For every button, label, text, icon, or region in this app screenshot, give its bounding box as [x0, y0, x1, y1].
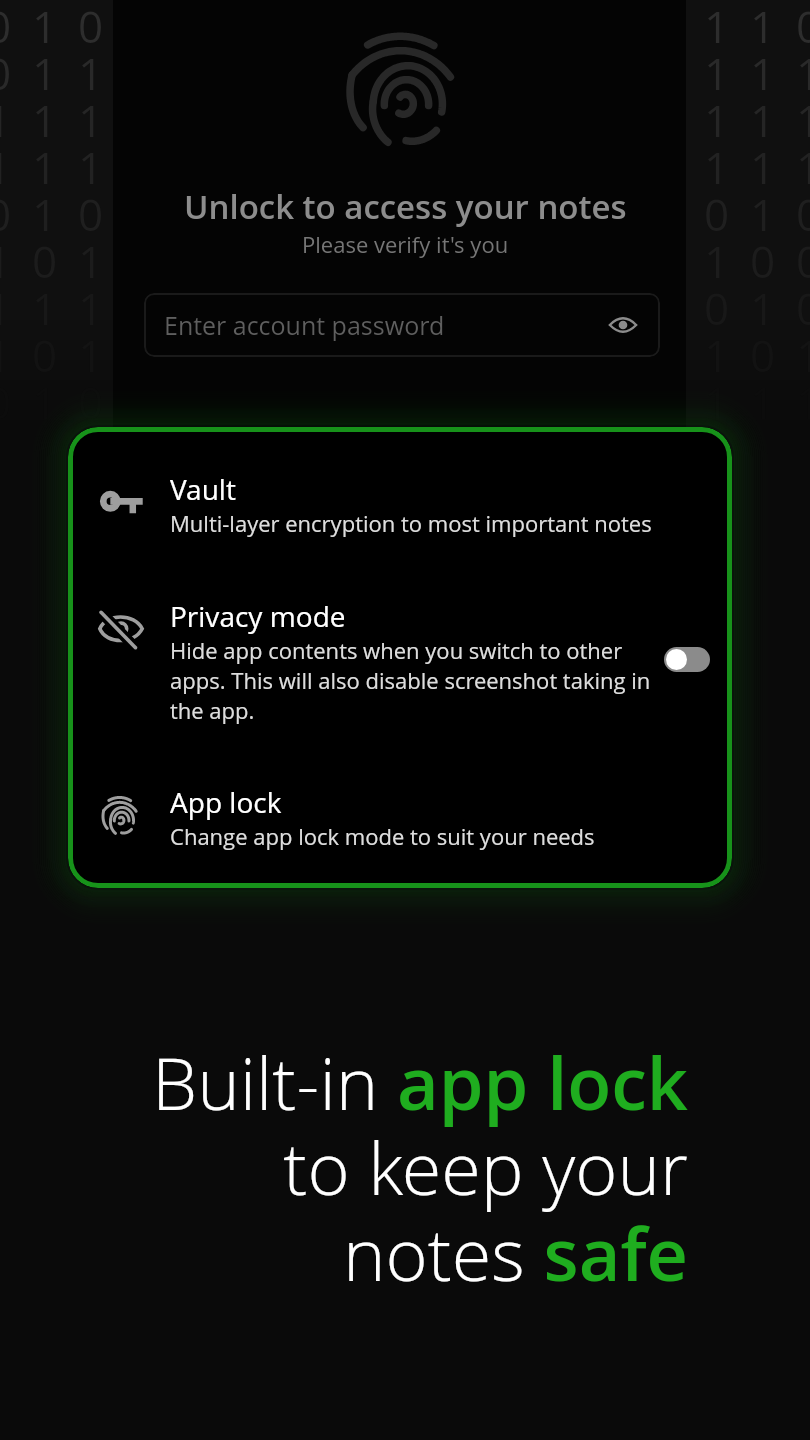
staticText: 1 — [750, 137, 776, 197]
staticText: Change app lock mode to suit your needs — [170, 821, 595, 851]
staticText: 0 — [32, 231, 58, 291]
button[interactable]: Privacy mode toggle — [664, 647, 710, 672]
staticText: 0 — [0, 0, 12, 56]
staticText: 0 — [78, 184, 104, 244]
staticText: 1 — [796, 43, 810, 103]
staticText: Enter account password — [164, 308, 445, 342]
staticText: 1 — [704, 0, 730, 56]
staticText: 0 — [704, 184, 730, 244]
staticText: 1 — [32, 90, 58, 150]
staticText: 1 — [78, 43, 104, 103]
staticText: 0 — [796, 231, 810, 291]
staticText: 1 — [750, 90, 776, 150]
staticText: 1 — [0, 137, 12, 197]
staticText: Vault — [170, 470, 236, 508]
staticText: Please verify it's you — [302, 229, 509, 259]
button[interactable]: Enter account password — [144, 293, 660, 357]
staticText: 0 — [78, 372, 104, 432]
staticText: 1 — [32, 0, 58, 56]
staticText: 1 — [750, 184, 776, 244]
staticText: 1 — [78, 231, 104, 291]
staticText: 1 — [32, 43, 58, 103]
staticText: 0 — [78, 0, 104, 56]
staticText: Privacy mode — [170, 597, 346, 635]
staticText: 1 — [750, 0, 776, 56]
staticText: 0 — [0, 43, 12, 103]
staticText: 1 — [32, 137, 58, 197]
staticText: 1 — [704, 90, 730, 150]
staticText: 0 — [750, 231, 776, 291]
button[interactable]: Show password — [602, 304, 644, 346]
staticText: Hide app contents when you switch to oth… — [170, 635, 668, 725]
staticText: 0 — [796, 184, 810, 244]
staticText: Multi-layer encryption to most important… — [170, 508, 652, 538]
staticText: 0 — [796, 0, 810, 56]
staticText: 1 — [704, 43, 730, 103]
staticText: Built-in app lock to keep your notes saf… — [0, 1033, 688, 1303]
button[interactable]: App lock — [170, 783, 690, 851]
staticText: 1 — [796, 90, 810, 150]
staticText: App lock — [170, 783, 282, 821]
staticText: 1 — [704, 137, 730, 197]
staticText: 1 — [750, 43, 776, 103]
staticText: 0 — [0, 184, 12, 244]
staticText: Unlock to access your notes — [184, 184, 627, 229]
button[interactable]: Privacy mode — [170, 597, 668, 725]
staticText: 1 — [796, 137, 810, 197]
staticText: 1 — [78, 90, 104, 150]
staticText: 1 — [32, 184, 58, 244]
staticText: 1 — [78, 137, 104, 197]
staticText: 1 — [0, 90, 12, 150]
staticText: 1 — [704, 231, 730, 291]
button[interactable]: Vault — [170, 470, 690, 538]
staticText: 1 — [704, 372, 730, 432]
